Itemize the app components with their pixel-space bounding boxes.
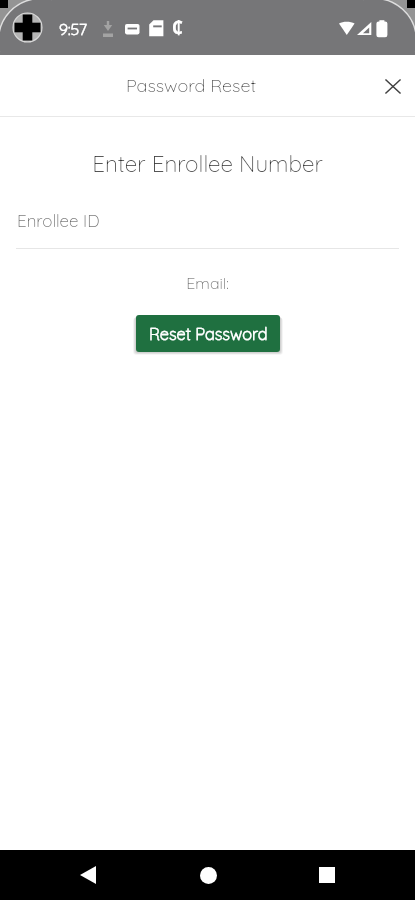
button[interactable]: Recent apps (307, 855, 347, 895)
button[interactable]: Home (188, 855, 228, 895)
staticText: Enter Enrollee Number (0, 149, 415, 177)
staticText: Password Reset (126, 74, 257, 97)
button[interactable]: Back (68, 855, 108, 895)
staticText: 9:57 (59, 19, 87, 39)
staticText: Reset Password (149, 324, 268, 344)
button[interactable]: Close (371, 64, 415, 108)
staticText: ₵ (172, 16, 183, 39)
staticText: Email: (0, 273, 415, 293)
staticText: Enrollee ID (17, 210, 100, 231)
button[interactable]: Reset Password (136, 315, 280, 352)
